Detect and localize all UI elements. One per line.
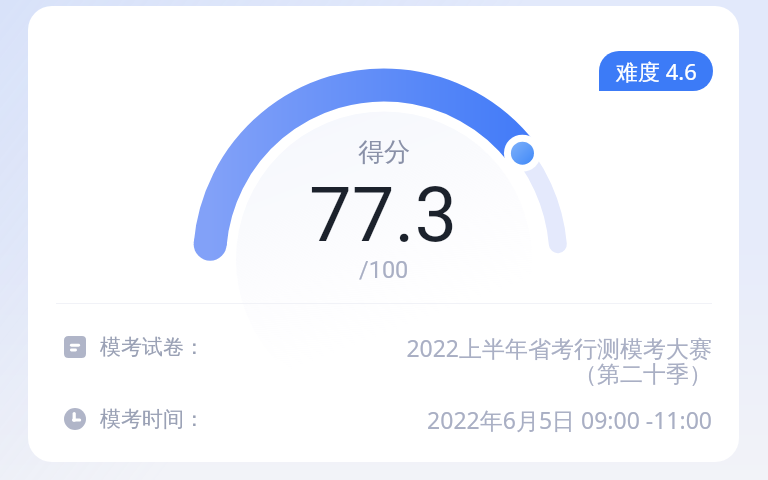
staticText: 得分 [358,136,410,169]
staticText: 2022上半年省考行测模考大赛 （第二十季） [205,332,712,389]
button[interactable]: 难度 4.6 [599,51,713,91]
staticText: 难度 4.6 [616,56,697,86]
staticText: 77.3 [309,170,458,259]
button[interactable]: 得分 [28,6,739,462]
staticText: /100 [359,256,409,284]
button[interactable]: 模考时间： [64,403,712,434]
button[interactable]: 模考试卷： [64,331,712,388]
staticText: 模考时间： [100,406,205,432]
staticText: 2022年6月5日 09:00 -11:00 [205,404,712,435]
staticText: 模考试卷： [100,334,205,360]
